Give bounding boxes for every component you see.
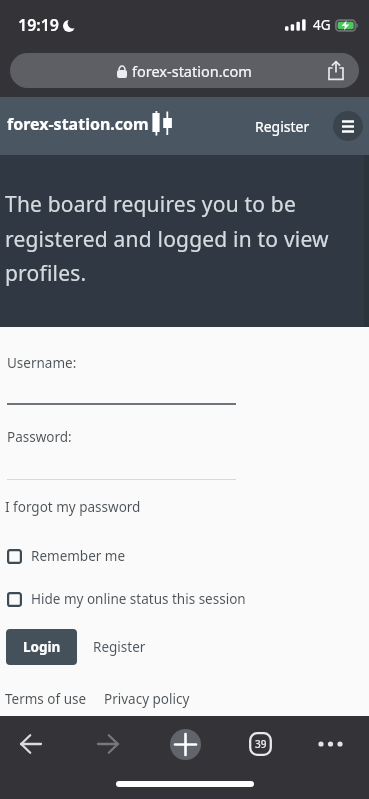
staticText: 19:19 xyxy=(18,14,60,36)
button[interactable] xyxy=(308,722,352,766)
button[interactable] xyxy=(163,722,207,766)
button[interactable]: Register xyxy=(251,113,314,140)
button[interactable]: Register xyxy=(89,634,150,660)
staticText: Privacy policy xyxy=(104,690,190,708)
staticText: Terms of use xyxy=(5,690,87,708)
button[interactable]: 39 xyxy=(238,722,282,766)
staticText: Hide my online status this session xyxy=(31,590,246,608)
button[interactable]: Login xyxy=(6,629,77,665)
staticText: Register xyxy=(93,638,146,656)
button[interactable] xyxy=(333,111,363,141)
staticText: forex-station.com xyxy=(7,113,149,135)
button[interactable]: forex-station.com xyxy=(10,53,359,88)
staticText: Register xyxy=(255,117,310,136)
staticText: Remember me xyxy=(31,547,126,565)
staticText: 4G xyxy=(313,16,331,34)
staticText: Username: xyxy=(7,354,77,372)
staticText: Login xyxy=(23,638,61,656)
button[interactable]: Terms of use xyxy=(5,690,87,708)
button[interactable] xyxy=(9,722,53,766)
button[interactable]: I forgot my password xyxy=(5,498,141,516)
button[interactable]: Privacy policy xyxy=(104,690,190,708)
staticText: 39 xyxy=(255,737,267,751)
staticText: The board requires you to be registered … xyxy=(5,190,329,287)
staticText: I forgot my password xyxy=(5,498,141,516)
button[interactable]: Remember me xyxy=(7,547,126,565)
button[interactable]: Hide my online status this session xyxy=(7,590,246,608)
button[interactable] xyxy=(86,722,130,766)
staticText: Password: xyxy=(7,428,72,446)
staticText: forex-station.com xyxy=(132,61,252,81)
